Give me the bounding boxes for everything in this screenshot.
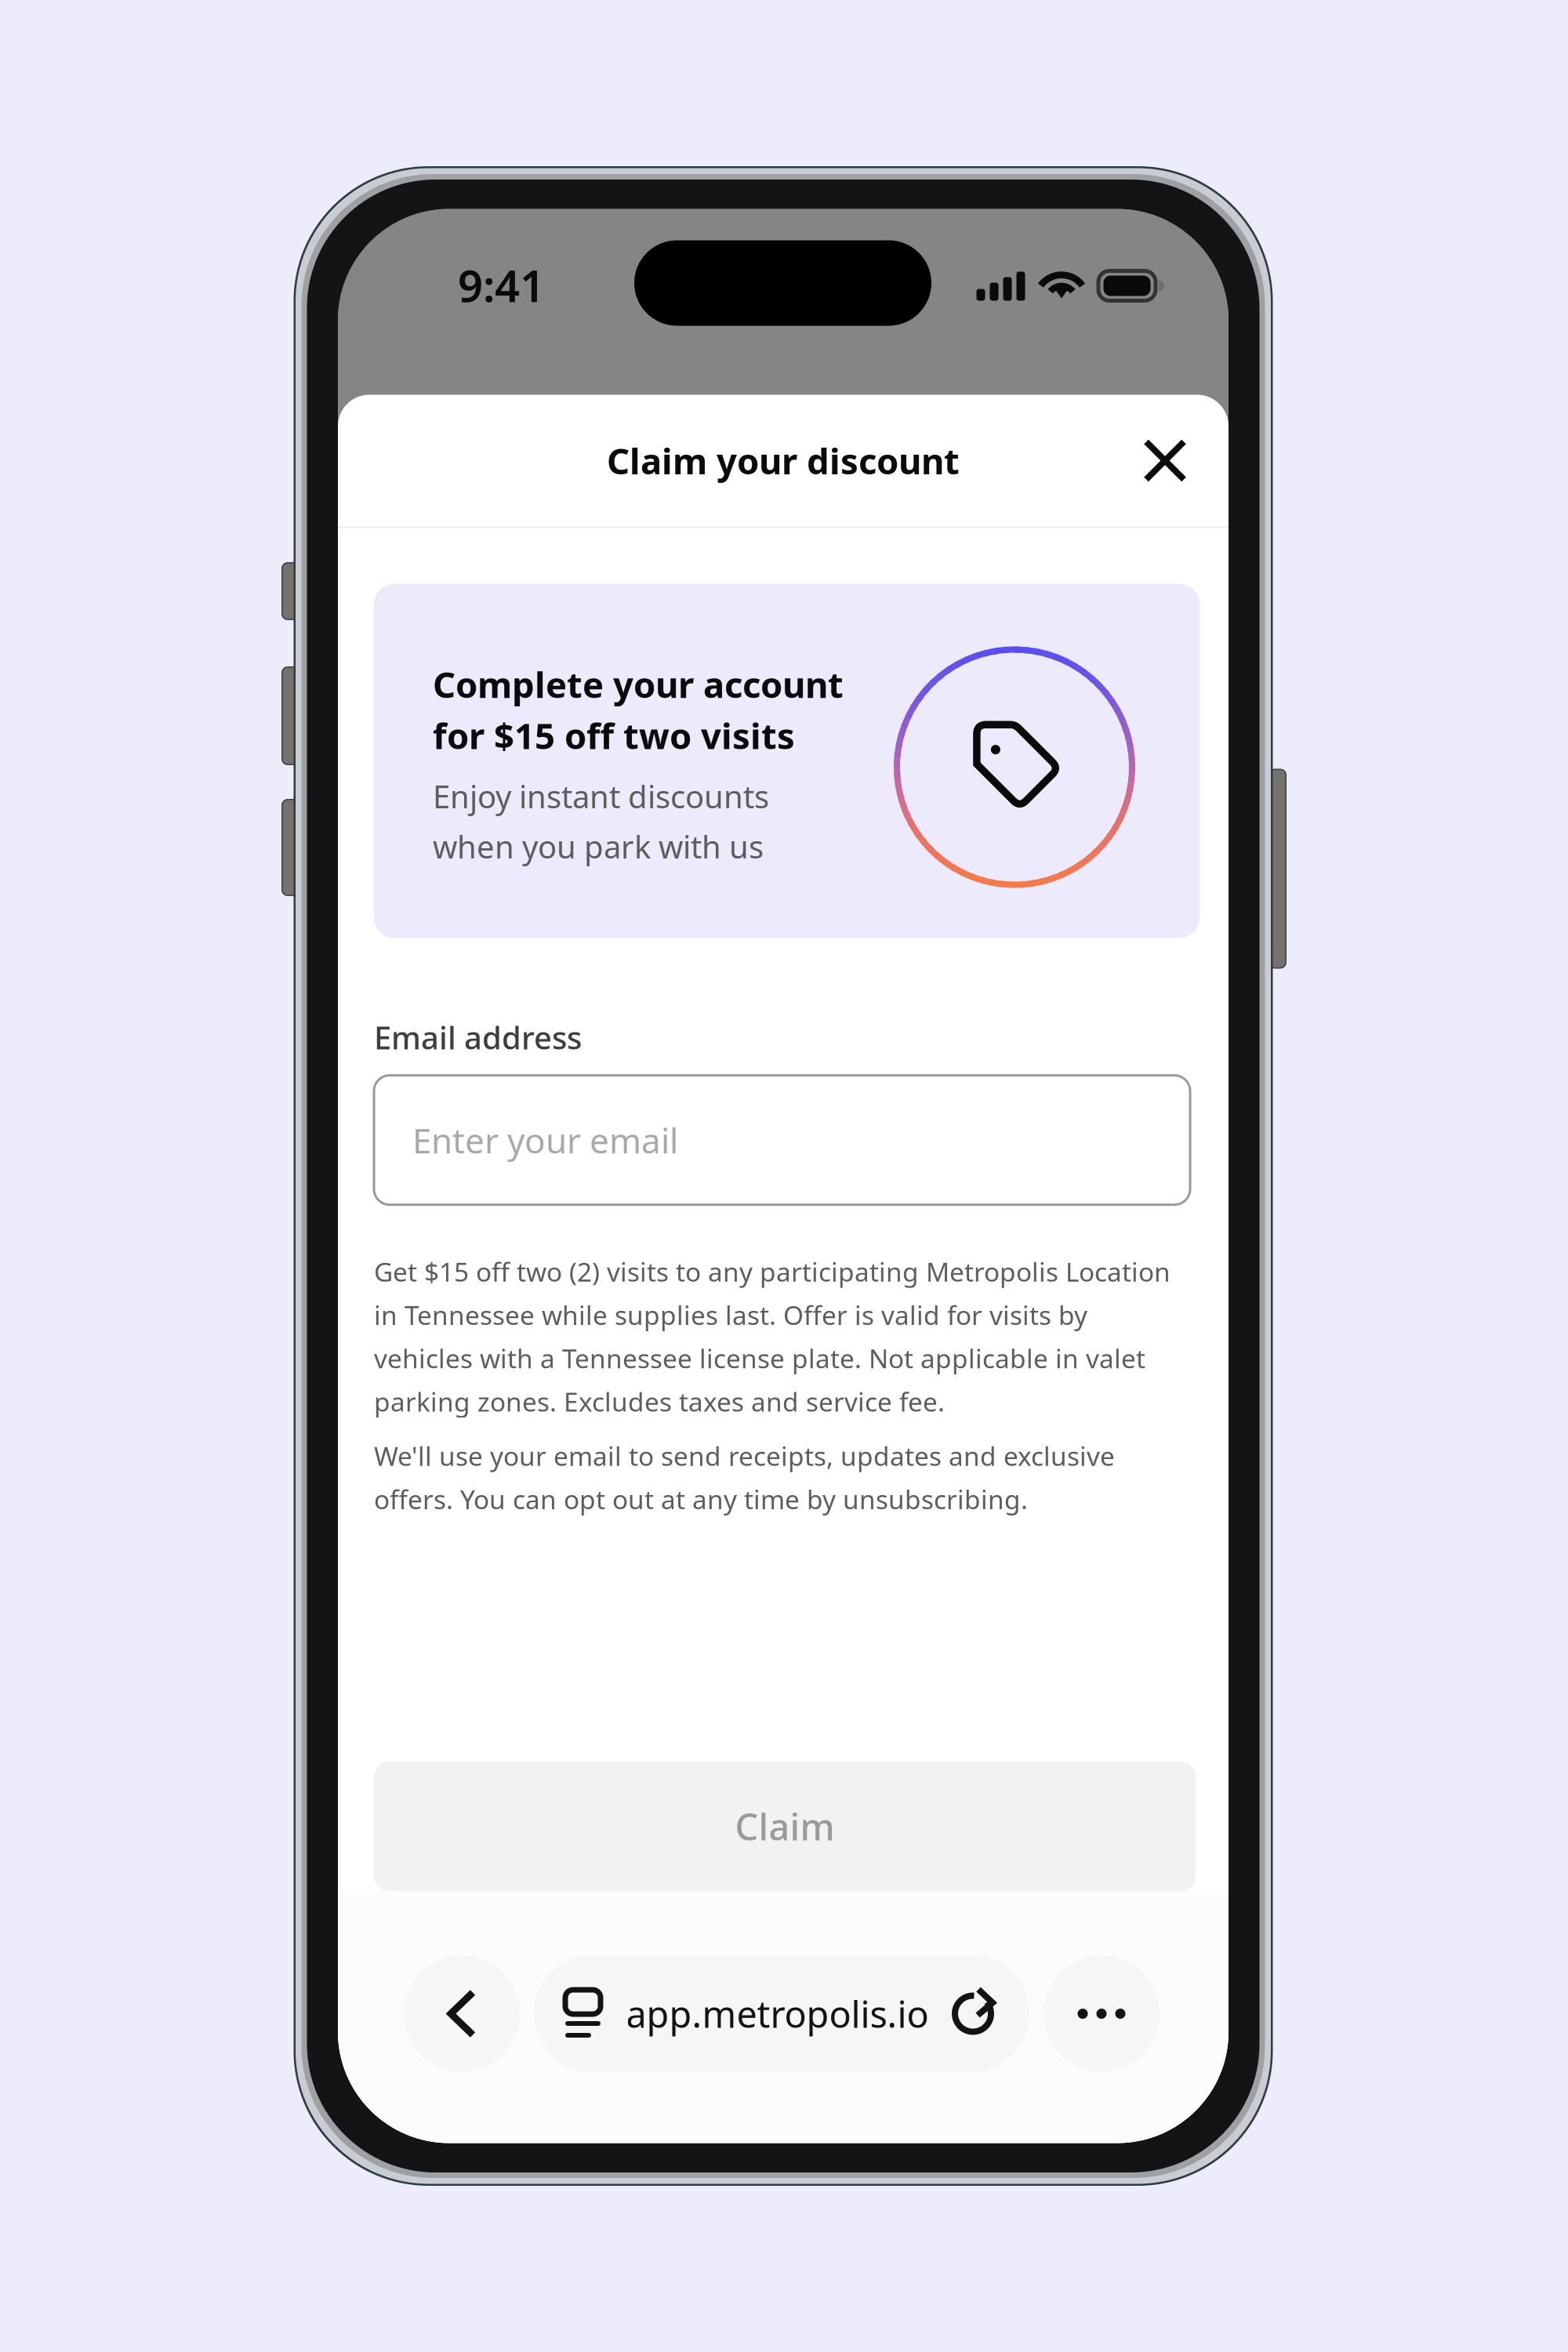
button[interactable]: Back — [404, 1956, 520, 2072]
staticText: We'll use your email to send receipts, u… — [374, 1438, 1115, 1516]
staticText: Enter your email — [412, 1117, 678, 1163]
button[interactable]: Claim — [374, 1761, 1196, 1891]
button[interactable]: More — [1044, 1956, 1160, 2072]
button[interactable]: app.metropolis.io — [534, 1955, 1029, 2073]
staticText: Complete your account — [433, 661, 844, 708]
staticText: app.metropolis.io — [626, 1989, 929, 2038]
staticText: 9:41 — [458, 256, 545, 314]
staticText: Claim — [735, 1802, 835, 1851]
staticText: Enjoy instant discounts — [433, 775, 769, 817]
staticText: Get $15 off two (2) visits to any partic… — [374, 1254, 1171, 1419]
staticText: Email address — [374, 1016, 582, 1058]
button[interactable]: Close — [1121, 417, 1209, 505]
staticText: when you park with us — [433, 826, 764, 867]
staticText: for $15 off two visits — [433, 712, 795, 759]
staticText: Claim your discount — [607, 437, 960, 484]
